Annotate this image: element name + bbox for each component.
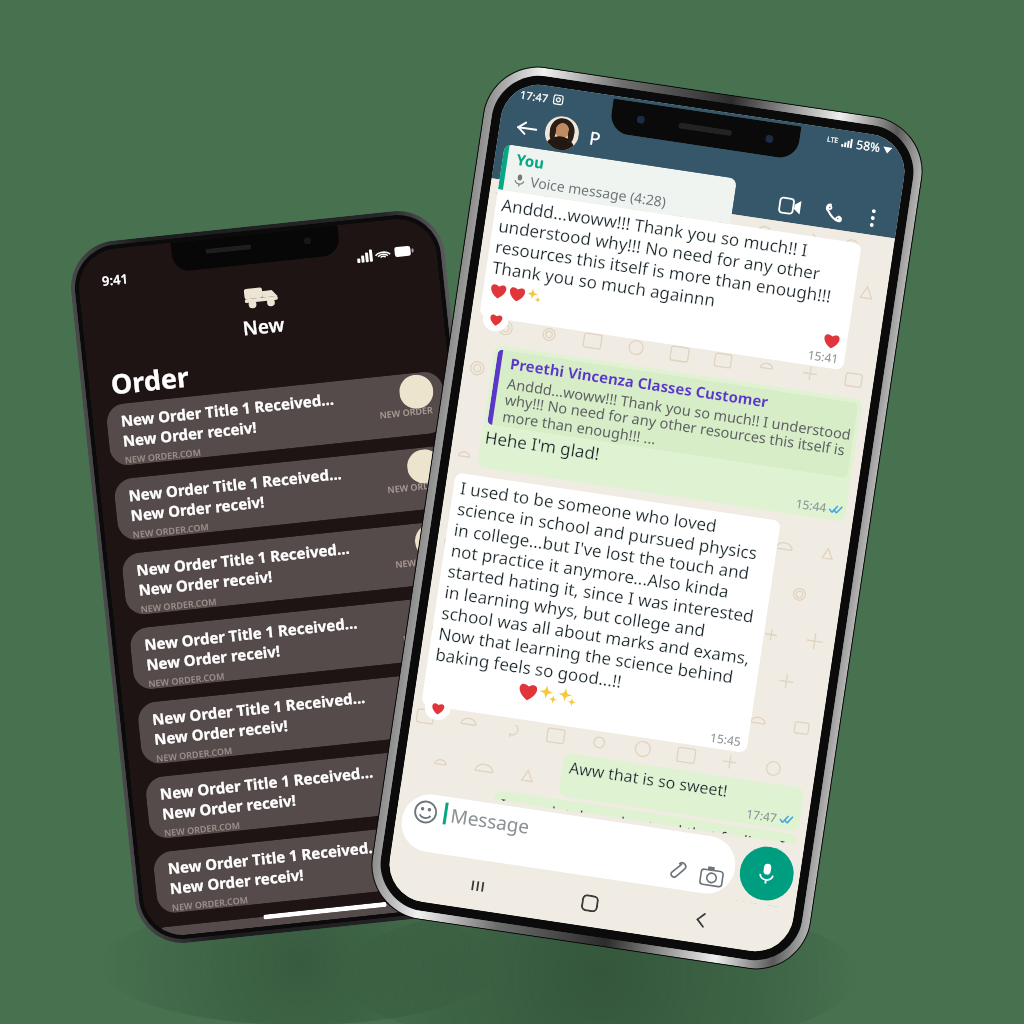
staticText: NEW ORDER — [387, 478, 442, 495]
staticText: NEW ORDER — [379, 403, 434, 421]
staticText: LTE — [826, 134, 839, 146]
button[interactable]: New Order Title 1 Received... — [113, 445, 455, 542]
button[interactable]: Recents — [456, 863, 501, 909]
staticText: New Order receiv! — [169, 864, 305, 898]
button[interactable]: New Order Title 1 Received... — [121, 519, 463, 616]
staticText: NEW ORDER — [426, 851, 481, 868]
staticText: NEW ORDER.COM — [124, 446, 202, 466]
staticText: NEW ORDER.COM — [140, 595, 218, 615]
staticText: Aww that is so sweet! — [568, 756, 729, 802]
staticText: I used to be someone who loved science i… — [434, 476, 774, 712]
button[interactable]: New Order Title 1 Received... — [144, 743, 487, 840]
button[interactable]: I used to be someone who loved science i… — [421, 472, 781, 753]
button[interactable]: Aww that is so sweet! — [558, 752, 805, 832]
staticText: Order — [109, 357, 191, 403]
staticText: 17:47 — [745, 805, 778, 825]
staticText: New — [241, 311, 286, 341]
button[interactable]: New Order Title 1 Received... — [105, 370, 448, 467]
staticText: 17:47 — [733, 890, 766, 910]
button[interactable]: Preethi Vincenza Classes Customer — [477, 345, 863, 522]
staticText: New Order Title 1 Received... — [127, 463, 342, 505]
button[interactable]: New Order Title 1 Received... — [129, 594, 471, 691]
staticText: New Order receiv! — [153, 715, 290, 749]
staticText: NEW ORDER — [410, 701, 465, 719]
staticText: P — [588, 125, 602, 152]
staticText: I completely understand that feeling, I … — [493, 793, 790, 897]
button[interactable]: Video call — [770, 186, 809, 225]
button[interactable]: Message — [397, 790, 739, 898]
staticText: Preethi Vincenza Classes Customer — [509, 353, 770, 412]
staticText: New Order receiv! — [122, 417, 258, 451]
button[interactable]: Back — [677, 896, 723, 942]
button[interactable]: Record voice message — [736, 843, 797, 904]
staticText: Message — [449, 802, 532, 840]
staticText: New Order Title 1 Received... — [120, 388, 335, 431]
button[interactable]: Back — [509, 111, 543, 145]
staticText: 17:47 — [519, 87, 550, 106]
staticText: Anddd...woww!!! Thank you so much!! I un… — [491, 193, 855, 331]
staticText: New Order Title 1 Received... — [159, 761, 374, 804]
staticText: New Order Title 1 Received... — [143, 612, 358, 655]
button[interactable]: New Order Title 1 Received... — [152, 818, 495, 915]
button[interactable]: New Order Title 1 Received... — [136, 668, 479, 765]
button[interactable]: Home — [567, 880, 612, 925]
staticText: NEW ORDER.COM — [163, 819, 241, 839]
staticText: 15:44 — [795, 495, 828, 515]
button[interactable]: I completely understand that feeling, I … — [483, 789, 798, 917]
staticText: Anddd...woww!!! Thank you so much!! I un… — [501, 373, 855, 478]
staticText: 15:45 — [709, 729, 742, 749]
staticText: New Order Title 1 Received... — [135, 538, 350, 580]
staticText: New Order Title 1 Received... — [151, 687, 366, 729]
staticText: New Order Title 1 Received... — [175, 911, 388, 936]
staticText: You — [515, 149, 546, 173]
staticText: 58% — [855, 136, 881, 155]
staticText: New Order Title 1 Received... — [167, 836, 382, 878]
staticText: NEW ORDER.COM — [171, 893, 249, 913]
staticText: NEW ORDER — [402, 627, 457, 644]
button[interactable]: Heart reaction — [423, 692, 453, 722]
staticText: 9:41 — [101, 269, 129, 290]
staticText: NEW ORDER — [395, 552, 450, 570]
staticText: New Order receiv! — [130, 491, 266, 525]
staticText: Voice message (4:28) — [529, 172, 668, 211]
button[interactable]: Voice call — [814, 193, 853, 231]
staticText: New Order receiv! — [137, 566, 274, 600]
button[interactable]: New Order Title 1 Received... — [160, 892, 497, 937]
button[interactable]: Anddd...woww!!! Thank you so much!! I un… — [479, 189, 862, 370]
staticText: Hehe I'm glad! — [483, 425, 602, 465]
staticText: NEW ORDER.COM — [156, 744, 233, 764]
staticText: NEW ORDER.COM — [132, 520, 210, 540]
button[interactable]: Heart reaction — [481, 304, 511, 333]
button[interactable]: More options — [856, 201, 890, 235]
staticText: New Order receiv! — [161, 790, 297, 824]
staticText: 15:41 — [807, 346, 840, 366]
staticText: NEW ORDER.COM — [148, 669, 225, 689]
staticText: New Order receiv! — [145, 640, 282, 674]
